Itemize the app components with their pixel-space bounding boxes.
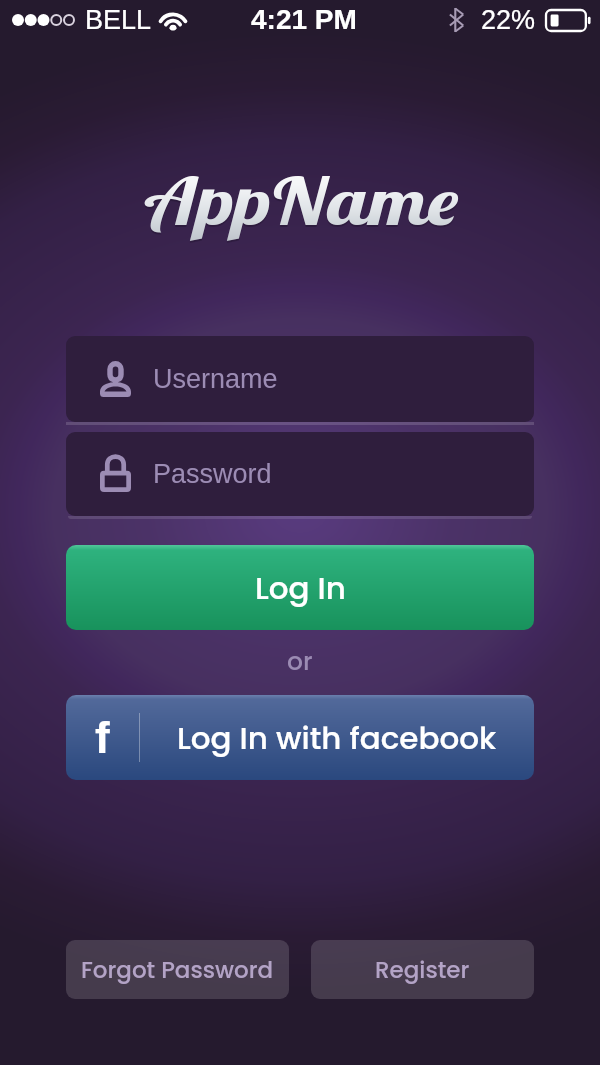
staticText: BELL (85, 5, 152, 35)
staticText: or (287, 644, 313, 679)
staticText: Forgot Password (81, 954, 274, 986)
staticText: AppName (148, 160, 460, 241)
staticText: Password (153, 459, 272, 489)
other: Battery (545, 9, 590, 32)
staticText: 22% (481, 5, 536, 35)
button[interactable]: Username (66, 336, 534, 422)
button[interactable]: Forgot Password (66, 940, 289, 999)
other: Wi-Fi (161, 12, 185, 29)
staticText: Log In (255, 566, 346, 609)
button[interactable]: f (66, 695, 534, 780)
button[interactable]: Password (66, 432, 534, 516)
other: Bluetooth (449, 8, 464, 32)
button[interactable]: Log In (66, 545, 534, 630)
staticText: Register (375, 954, 470, 986)
staticText: f (95, 713, 110, 762)
staticText: AppName (148, 162, 460, 243)
staticText: 4:21 PM (251, 4, 357, 35)
button[interactable]: Register (311, 940, 534, 999)
staticText: Username (153, 364, 278, 394)
staticText: Log In with facebook (177, 716, 497, 759)
